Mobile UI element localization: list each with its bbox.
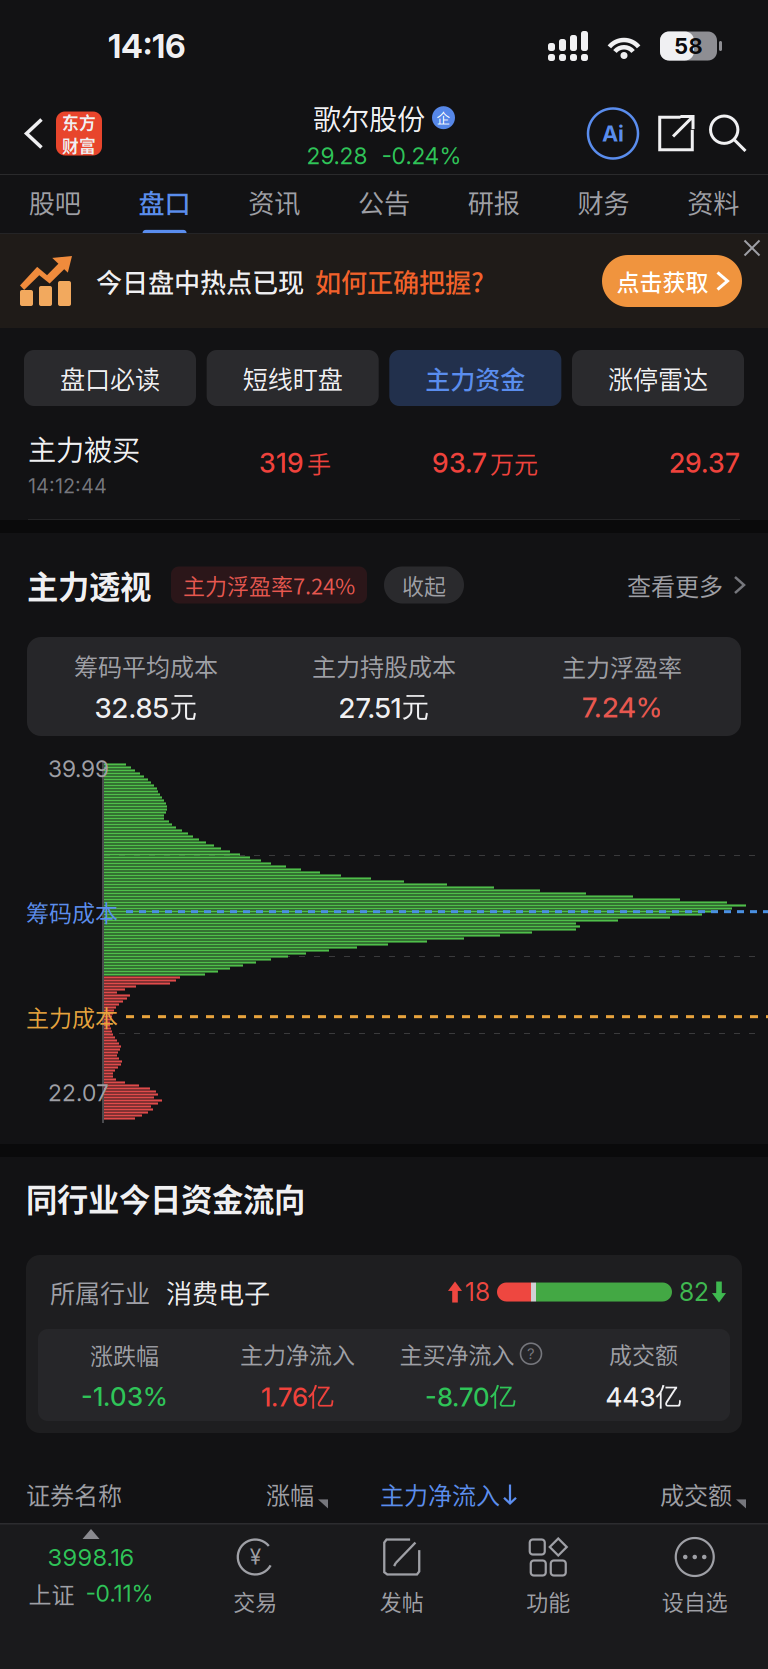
- button[interactable]: 公告: [329, 175, 439, 234]
- staticText: 东方: [62, 110, 96, 134]
- staticText: Ai: [602, 120, 624, 147]
- staticText: -0.24%: [381, 142, 461, 170]
- button[interactable]: 关闭: [736, 234, 768, 262]
- staticText: 1.76亿: [261, 1380, 334, 1413]
- staticText: 32.85元: [94, 690, 197, 725]
- button[interactable]: 盘口必读: [24, 350, 196, 406]
- staticText: -8.70亿: [425, 1380, 516, 1413]
- staticText: 筹码平均成本: [74, 648, 218, 683]
- staticText: ¥: [250, 1544, 261, 1570]
- staticText: 涨停雷达: [608, 360, 708, 396]
- staticText: 主力资金: [425, 360, 525, 396]
- button[interactable]: 返回: [12, 98, 56, 168]
- staticText: 443亿: [605, 1380, 681, 1413]
- staticText: 14:12:44: [28, 474, 107, 498]
- button[interactable]: 收起: [384, 566, 464, 603]
- button[interactable]: 股吧: [0, 175, 110, 234]
- staticText: 主力净流入: [380, 1477, 500, 1511]
- button[interactable]: 搜索: [704, 103, 752, 163]
- staticText: 今日盘中热点已现: [96, 262, 304, 300]
- staticText: 交易: [233, 1585, 277, 1617]
- button[interactable]: 财务: [549, 175, 658, 234]
- staticText: 发帖: [380, 1585, 424, 1617]
- staticText: 主力浮盈率: [562, 649, 682, 684]
- staticText: 82: [679, 1277, 709, 1307]
- staticText: 设自选: [662, 1585, 728, 1617]
- staticText: 18: [465, 1277, 490, 1307]
- staticText: 主力透视: [27, 562, 151, 608]
- staticText: 如何正确把握?: [315, 262, 484, 300]
- button[interactable]: 查看更多: [627, 568, 744, 602]
- staticText: 消费电子: [166, 1273, 270, 1311]
- staticText: 93.7: [432, 447, 487, 479]
- staticText: 主力净流入: [240, 1337, 355, 1370]
- staticText: 盘口必读: [60, 360, 160, 396]
- staticText: -0.11%: [85, 1580, 153, 1607]
- button[interactable]: 东方财富: [56, 111, 102, 155]
- staticText: -1.03%: [81, 1381, 168, 1412]
- staticText: 手: [307, 446, 331, 480]
- staticText: 29.28: [306, 142, 367, 170]
- button[interactable]: AI 助手: [588, 108, 638, 158]
- staticText: 短线盯盘: [243, 360, 343, 396]
- staticText: 万元: [490, 446, 538, 480]
- button[interactable]: 资讯: [219, 175, 329, 234]
- staticText: 成交额: [660, 1477, 732, 1511]
- staticText: 主力成本: [26, 1000, 118, 1033]
- staticText: 资料: [687, 183, 739, 221]
- staticText: 歌尔股份: [313, 97, 425, 138]
- staticText: 上证: [28, 1577, 74, 1610]
- staticText: 主力持股成本: [312, 648, 456, 683]
- button[interactable]: 主力资金: [389, 350, 561, 406]
- staticText: 27.51元: [338, 690, 429, 725]
- staticText: 财富: [62, 133, 96, 157]
- staticText: 筹码成本: [26, 895, 118, 928]
- staticText: 涨跌幅: [90, 1338, 159, 1371]
- button[interactable]: 设自选: [621, 1523, 768, 1669]
- button[interactable]: 涨幅: [266, 1477, 328, 1511]
- button[interactable]: 短线盯盘: [207, 350, 379, 406]
- staticText: 主力被买: [28, 428, 140, 469]
- staticText: 企: [436, 108, 450, 127]
- staticText: 查看更多: [627, 568, 723, 602]
- staticText: 功能: [526, 1585, 570, 1617]
- button[interactable]: 发帖: [328, 1523, 475, 1669]
- staticText: 公告: [358, 183, 410, 221]
- staticText: 58: [674, 33, 702, 59]
- button[interactable]: 分享: [652, 103, 700, 163]
- staticText: 3998.16: [47, 1543, 134, 1572]
- staticText: 涨幅: [266, 1477, 314, 1511]
- staticText: 点击获取: [616, 264, 708, 298]
- staticText: ?: [527, 1345, 535, 1363]
- staticText: 股吧: [29, 183, 81, 221]
- staticText: 29.37: [669, 447, 740, 479]
- staticText: 主买净流入: [399, 1337, 514, 1370]
- staticText: 319: [259, 447, 304, 479]
- staticText: 同行业今日资金流向: [26, 1175, 305, 1221]
- staticText: 22.07: [48, 1079, 109, 1107]
- button[interactable]: ¥: [182, 1523, 328, 1669]
- staticText: 研报: [468, 183, 520, 221]
- button[interactable]: 点击获取: [602, 255, 742, 307]
- staticText: 39.99: [48, 755, 109, 783]
- staticText: 成交额: [609, 1337, 678, 1370]
- staticText: 证券名称: [26, 1477, 122, 1511]
- staticText: 主力浮盈率7.24%: [183, 569, 355, 601]
- staticText: 收起: [402, 569, 446, 601]
- button[interactable]: 成交额: [660, 1477, 746, 1511]
- button[interactable]: 上证指数: [0, 1523, 182, 1669]
- button[interactable]: 资料: [658, 175, 768, 234]
- staticText: 财务: [577, 183, 629, 221]
- staticText: 盘口: [139, 183, 191, 221]
- staticText: 14:16: [108, 26, 186, 66]
- staticText: 7.24%: [582, 691, 662, 724]
- staticText: 所属行业: [50, 1274, 150, 1310]
- button[interactable]: 功能: [475, 1523, 621, 1669]
- button[interactable]: 涨停雷达: [572, 350, 744, 406]
- button[interactable]: 主力净流入: [380, 1477, 516, 1511]
- button[interactable]: 研报: [439, 175, 549, 234]
- staticText: 资讯: [248, 183, 300, 221]
- button[interactable]: 盘口: [110, 175, 219, 234]
